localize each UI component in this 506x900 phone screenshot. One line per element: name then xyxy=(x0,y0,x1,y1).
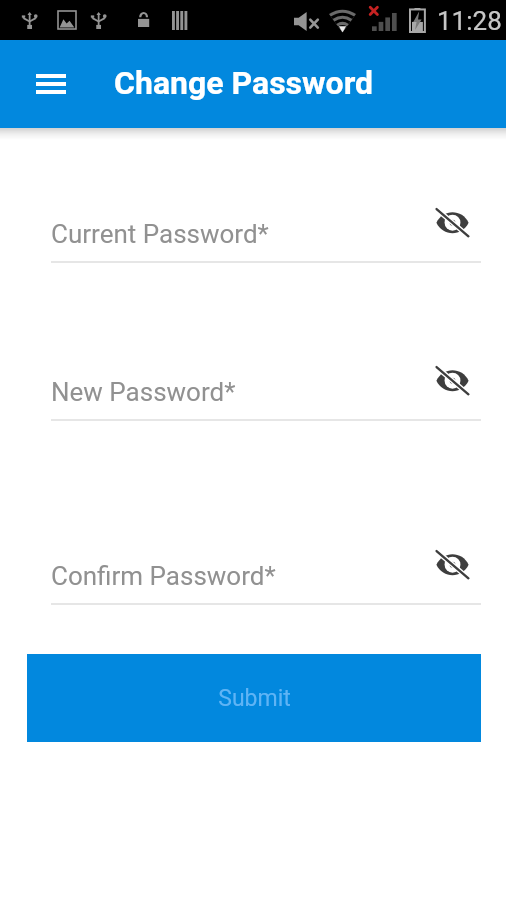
button[interactable]: Toggle password visibility xyxy=(428,199,476,247)
staticText: Confirm Password* xyxy=(51,561,276,591)
staticText: Submit xyxy=(218,685,291,712)
staticText: Change Password xyxy=(114,64,374,102)
staticText: Current Password* xyxy=(51,219,269,249)
staticText: 11:28 xyxy=(437,6,502,36)
button[interactable]: New Password* xyxy=(0,363,506,421)
button[interactable]: Toggle password visibility xyxy=(428,541,476,589)
button[interactable]: Open navigation menu xyxy=(21,54,81,114)
button[interactable]: Toggle password visibility xyxy=(428,357,476,405)
button[interactable]: Confirm Password* xyxy=(0,547,506,605)
button[interactable]: Submit xyxy=(27,654,481,742)
button[interactable]: Current Password* xyxy=(0,205,506,263)
staticText: New Password* xyxy=(51,377,236,407)
